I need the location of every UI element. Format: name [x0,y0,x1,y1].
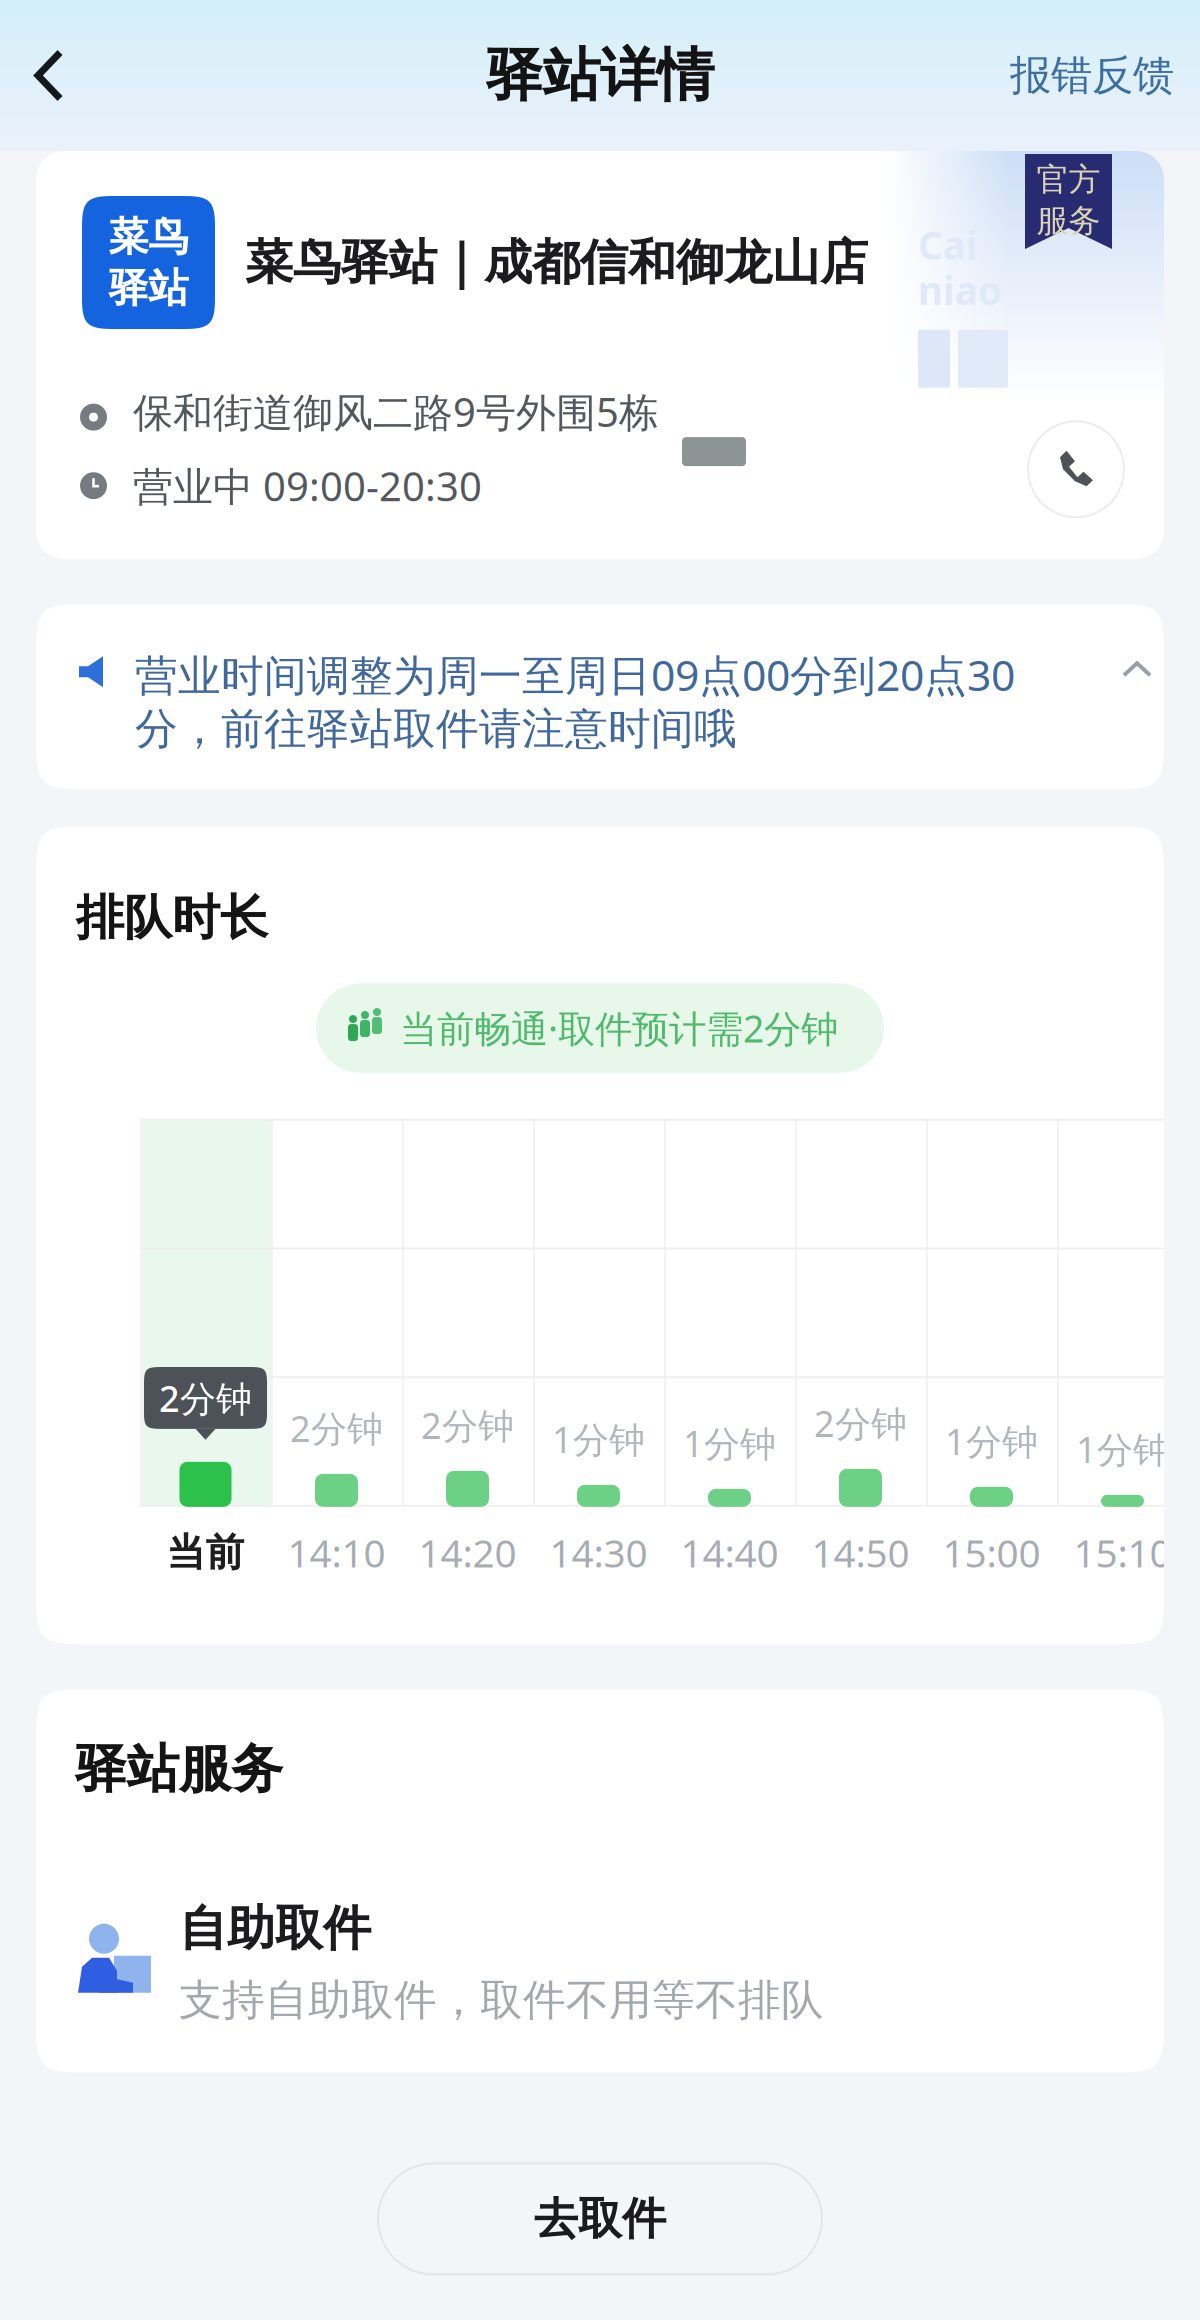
staticText: 2分钟 [159,1374,252,1422]
staticText: niao [918,264,1002,316]
button[interactable]: 自助取件 [36,1801,1164,2072]
staticText: 驿站 [108,263,188,313]
staticText: 驿站服务 [75,1737,283,1801]
staticText: 14:50 [811,1527,909,1578]
button[interactable]: 报错反馈 [984,11,1200,139]
staticText: 排队时长 [76,888,268,947]
staticText: 1分钟 [552,1415,645,1463]
staticText: 去取件 [534,2192,666,2246]
staticText: 1分钟 [1076,1425,1169,1473]
staticText: 自助取件 [179,1899,371,1958]
button[interactable]: Back [0,11,98,139]
staticText: 14:10 [287,1527,385,1578]
staticText: 官方 [1036,160,1100,199]
staticText: 15:00 [942,1527,1040,1578]
staticText: 服务 [1036,201,1100,241]
staticText: 14:30 [549,1527,647,1578]
staticText: Cai [918,219,978,270]
button[interactable]: Collapse notice [1122,646,1152,678]
staticText: 营业时间调整为周一至周日09点00分到20点30分，前往驿站取件请注意时间哦 [135,646,1015,755]
staticText: 1分钟 [945,1417,1038,1465]
staticText: 14:20 [418,1527,516,1578]
staticText: 15:10 [1073,1527,1171,1578]
staticText: 2分钟 [290,1404,383,1452]
staticText: 当前 [166,1529,244,1576]
button[interactable]: Call station [1028,421,1124,517]
staticText: 支持自助取件，取件不用等不排队 [179,1974,824,2026]
staticText: 报错反馈 [1010,50,1174,101]
staticText: 营业中 09:00-20:30 [133,459,482,512]
staticText: 菜鸟 [108,212,188,261]
staticText: 当前畅通·取件预计需2分钟 [400,1003,838,1053]
staticText: 1分钟 [683,1419,776,1467]
staticText: 保和街道御风二路9号外围5栋 [133,385,659,438]
staticText: 驿站详情 [486,40,714,111]
button[interactable]: 去取件 [378,2163,822,2274]
staticText: 菜鸟驿站｜成都信和御龙山店 [245,233,868,292]
staticText: 2分钟 [421,1401,514,1449]
staticText: 2分钟 [814,1399,907,1447]
staticText: 14:40 [680,1527,778,1578]
